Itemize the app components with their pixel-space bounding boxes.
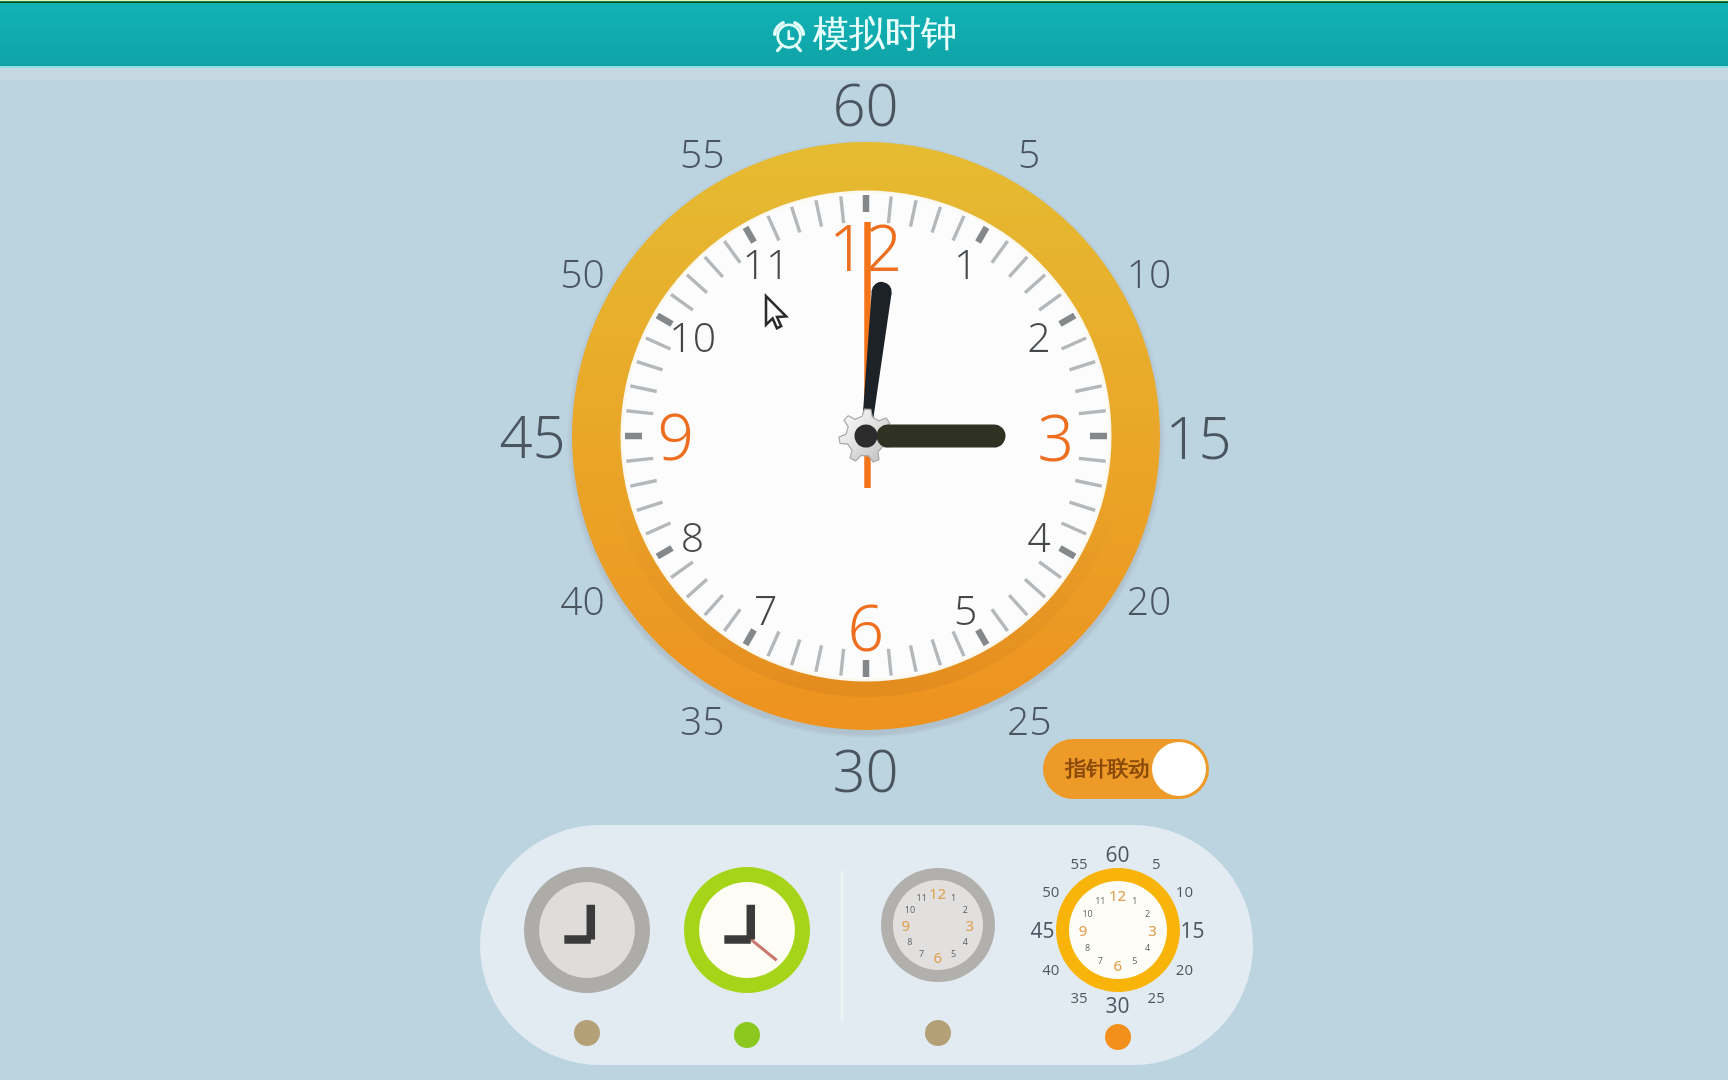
button[interactable]: Green clock style <box>684 867 810 993</box>
button[interactable]: Orange numbered clock style <box>1056 868 1180 992</box>
staticText: 模拟时钟 <box>813 11 957 56</box>
button[interactable]: Numbered clock style <box>881 868 995 982</box>
button[interactable]: Analog clock, 3:01 <box>572 142 1160 730</box>
button[interactable]: Simple clock style <box>524 867 650 993</box>
staticText: 指针联动 <box>1065 756 1149 782</box>
button[interactable]: 指针联动 <box>1043 739 1209 799</box>
